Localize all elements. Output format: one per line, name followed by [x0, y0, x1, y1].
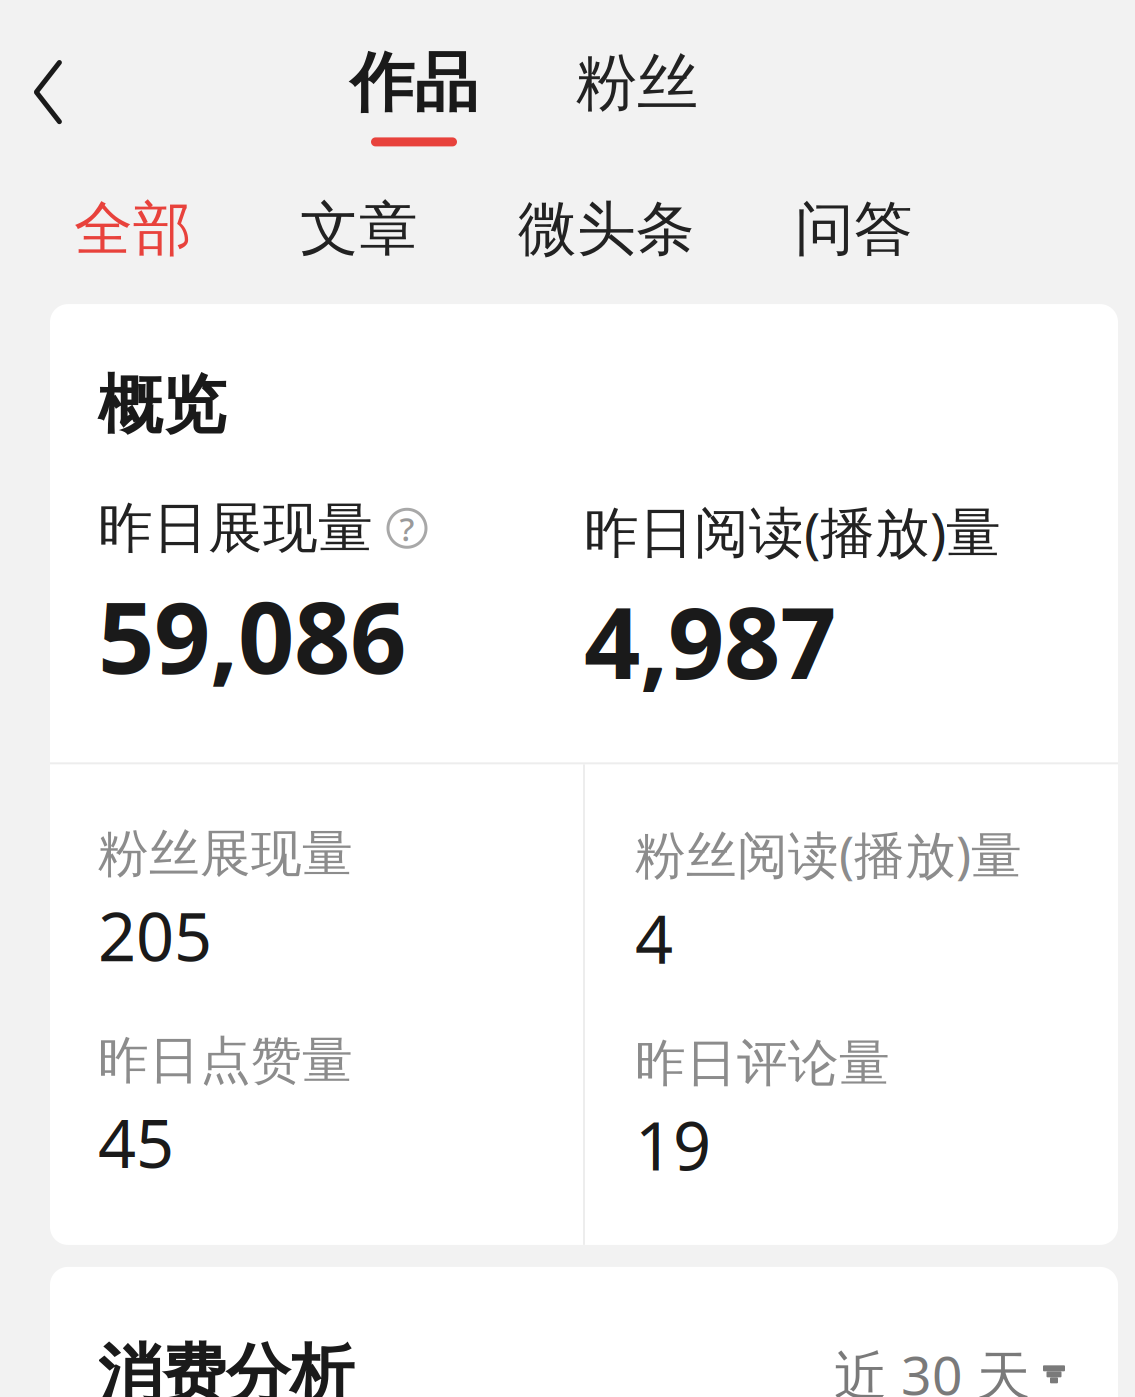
staticText: 205	[98, 891, 212, 980]
button[interactable]: 作品	[330, 38, 498, 146]
staticText: 4	[635, 894, 673, 982]
staticText: 作品	[350, 44, 478, 122]
button[interactable]: 文章	[274, 177, 444, 281]
staticText: 问答	[795, 193, 913, 265]
staticText: 昨日点赞量	[98, 1030, 353, 1092]
staticText: 昨日展现量	[98, 495, 373, 562]
staticText: 昨日阅读(播放)量	[584, 495, 1001, 567]
button[interactable]: 问答	[769, 177, 939, 281]
button[interactable]: 近 30 天	[826, 1329, 1074, 1397]
button[interactable]: 粉丝	[556, 39, 718, 145]
staticText: 全部	[74, 193, 192, 265]
staticText: 文章	[300, 193, 418, 265]
staticText: 微头条	[518, 193, 695, 265]
staticText: 近 30 天	[834, 1339, 1030, 1397]
button[interactable]: 微头条	[492, 177, 721, 281]
staticText: 消费分析	[98, 1335, 354, 1397]
staticText: 4,987	[584, 575, 836, 706]
button[interactable]: 全部	[48, 177, 218, 281]
staticText: 概览	[98, 366, 226, 445]
staticText: 59,086	[98, 570, 406, 701]
staticText: 粉丝展现量	[98, 823, 353, 885]
staticText: ?	[399, 506, 414, 550]
staticText: 昨日评论量	[635, 1032, 890, 1094]
staticText: 粉丝阅读(播放)量	[635, 820, 1022, 888]
staticText: 粉丝	[576, 45, 698, 121]
staticText: 19	[635, 1100, 711, 1189]
button[interactable]: Back	[0, 44, 96, 140]
staticText: 45	[98, 1098, 174, 1186]
